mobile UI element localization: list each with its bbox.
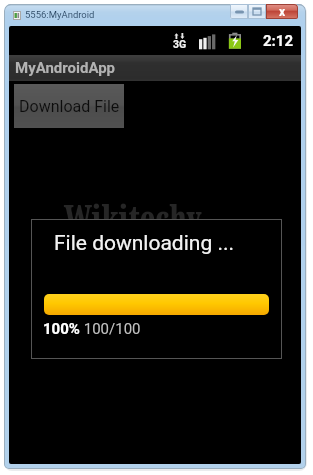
staticText: File downloading ...: [54, 231, 235, 256]
staticText: Download File: [19, 97, 120, 116]
staticText: Wikitechy: [64, 194, 202, 240]
button[interactable]: Minimize: [230, 4, 248, 19]
button[interactable]: Close: [266, 4, 298, 19]
staticText: x: [279, 5, 286, 19]
staticText: 3G: [173, 38, 187, 50]
staticText: MyAndroidApp: [15, 59, 116, 77]
staticText: 100/100: [80, 320, 141, 338]
button[interactable]: Download File: [14, 84, 124, 128]
staticText: 5556:MyAndroid: [25, 9, 95, 20]
staticText: 100%: [43, 320, 80, 338]
button[interactable]: Maximize: [248, 4, 266, 19]
staticText: 2:12: [263, 32, 294, 50]
